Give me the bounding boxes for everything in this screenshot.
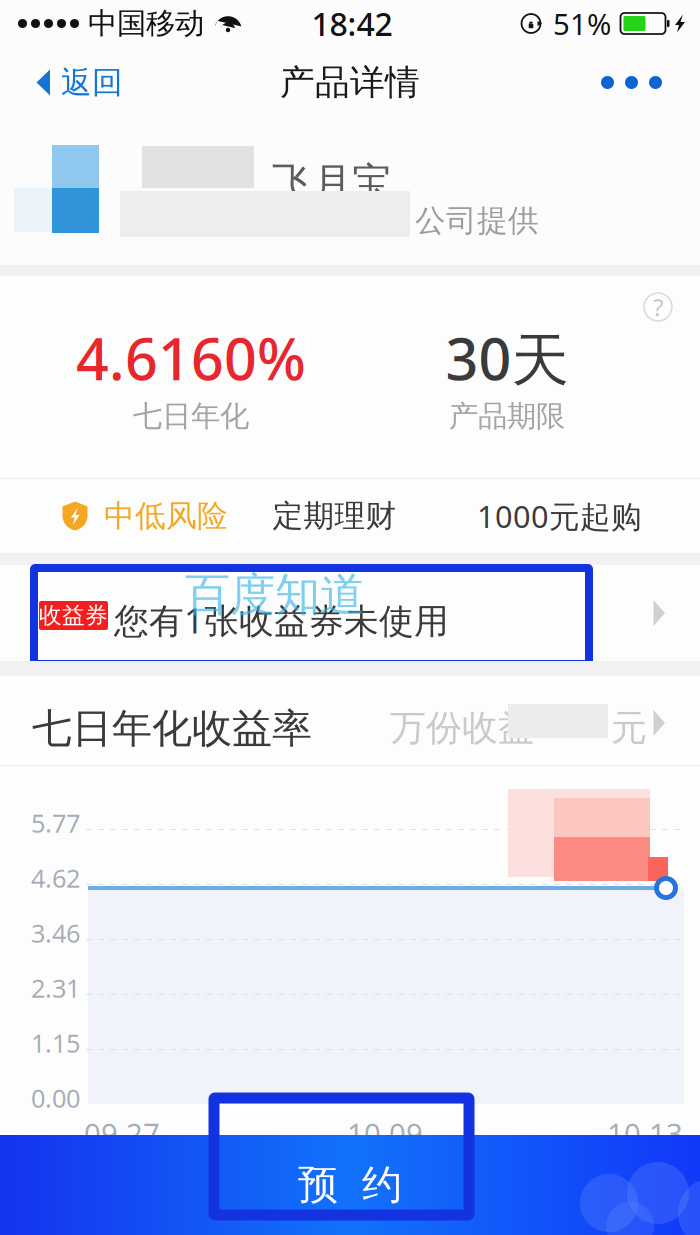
staticText: 18:42 [311, 2, 392, 45]
staticText: 30天 [445, 320, 568, 396]
staticText: 七日年化收益率 [32, 704, 312, 753]
staticText: 收益券 [39, 602, 108, 629]
staticText: 返回 [61, 64, 123, 101]
staticText: 产品期限 [449, 398, 565, 434]
staticText: 10.13 [607, 1114, 683, 1153]
staticText: 3.46 [31, 916, 80, 950]
staticText: 51% [553, 4, 611, 43]
staticText: 1000元起购 [477, 496, 642, 536]
staticText: ? [653, 291, 663, 323]
button[interactable]: Help [634, 283, 682, 331]
staticText: 定期理财 [272, 497, 396, 535]
staticText: 4.6160% [76, 320, 306, 396]
button[interactable]: 返回 [0, 49, 141, 116]
button[interactable]: More options [577, 49, 700, 116]
staticText: 09.27 [84, 1114, 160, 1153]
staticText: 中国移动 [88, 5, 204, 41]
staticText: 2.31 [31, 971, 80, 1005]
button[interactable]: 七日年化收益率 [0, 676, 700, 765]
button[interactable]: 收益券 [0, 565, 700, 661]
staticText: 产品详情 [280, 61, 420, 104]
staticText: 0.00 [31, 1081, 80, 1115]
staticText: 5.77 [31, 806, 80, 840]
staticText: 您有1张收益券未使用 [114, 597, 449, 643]
staticText: 10.09 [347, 1114, 423, 1153]
staticText: 百度知道 [185, 567, 365, 623]
staticText: 元 [611, 706, 647, 750]
staticText: 七日年化 [133, 398, 249, 434]
staticText: 万份收益 [390, 706, 534, 750]
staticText: 4.62 [31, 861, 80, 895]
staticText: 中低风险 [104, 497, 228, 535]
staticText: 1.15 [31, 1026, 80, 1060]
staticText: 飞月宝 [272, 158, 392, 207]
staticText: 公司提供 [415, 202, 539, 240]
staticText: 预 约 [298, 1160, 402, 1209]
button[interactable]: 预 约 [0, 1135, 700, 1235]
